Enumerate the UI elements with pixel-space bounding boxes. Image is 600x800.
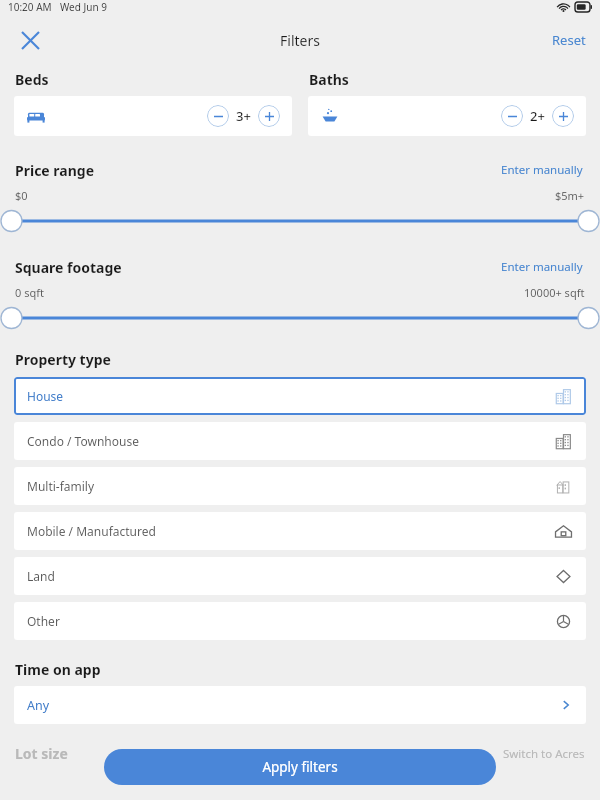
staticText: Baths (309, 70, 349, 89)
button[interactable]: Land (14, 557, 586, 595)
staticText: $5m+ (555, 188, 585, 203)
staticText: Condo / Townhouse (27, 433, 139, 449)
staticText: Square footage (15, 258, 122, 277)
button[interactable]: Range slider (0, 306, 600, 330)
button[interactable]: Any (14, 686, 586, 724)
staticText: $0 (15, 188, 28, 203)
button[interactable]: House (14, 377, 586, 415)
staticText: Lot size (15, 744, 68, 763)
button[interactable]: Apply filters (104, 749, 496, 785)
staticText: 2+ (530, 107, 545, 125)
staticText: Price range (15, 161, 95, 180)
button[interactable]: Condo / Townhouse (14, 422, 586, 460)
button[interactable]: Mobile / Manufactured (14, 512, 586, 550)
staticText: Reset (552, 31, 586, 49)
staticText: Any (27, 697, 50, 714)
staticText: Switch to Acres (503, 746, 585, 762)
staticText: Enter manually (501, 162, 583, 178)
staticText: Other (27, 613, 60, 629)
staticText: Mobile / Manufactured (27, 523, 156, 539)
button[interactable]: Enter manually (499, 255, 585, 279)
button[interactable]: Decrease Baths (308, 96, 586, 136)
staticText: Time on app (15, 660, 101, 679)
staticText: Filters (280, 31, 320, 50)
staticText: 0 sqft (15, 285, 44, 300)
button[interactable]: Decrease Baths (501, 105, 523, 127)
button[interactable]: Range slider (0, 209, 600, 233)
staticText: Property type (15, 350, 111, 369)
button[interactable]: Decrease Beds (14, 96, 292, 136)
staticText: Land (27, 568, 55, 584)
button[interactable]: Decrease Beds (207, 105, 229, 127)
button[interactable]: Enter manually (499, 158, 585, 182)
staticText: Beds (15, 70, 49, 89)
button[interactable]: Close (12, 22, 48, 58)
staticText: Enter manually (501, 259, 583, 275)
button[interactable]: Multi-family (14, 467, 586, 505)
button[interactable]: Other (14, 602, 586, 640)
staticText: 10000+ sqft (524, 285, 585, 300)
staticText: 10:20 AM (8, 0, 52, 14)
staticText: 3+ (236, 107, 251, 125)
staticText: Apply filters (262, 758, 338, 776)
staticText: House (27, 388, 64, 404)
button[interactable]: Increase Beds (258, 105, 280, 127)
button[interactable]: Increase Baths (552, 105, 574, 127)
button[interactable]: Reset (548, 25, 590, 55)
staticText: Wed Jun 9 (60, 0, 107, 14)
staticText: Multi-family (27, 478, 95, 494)
